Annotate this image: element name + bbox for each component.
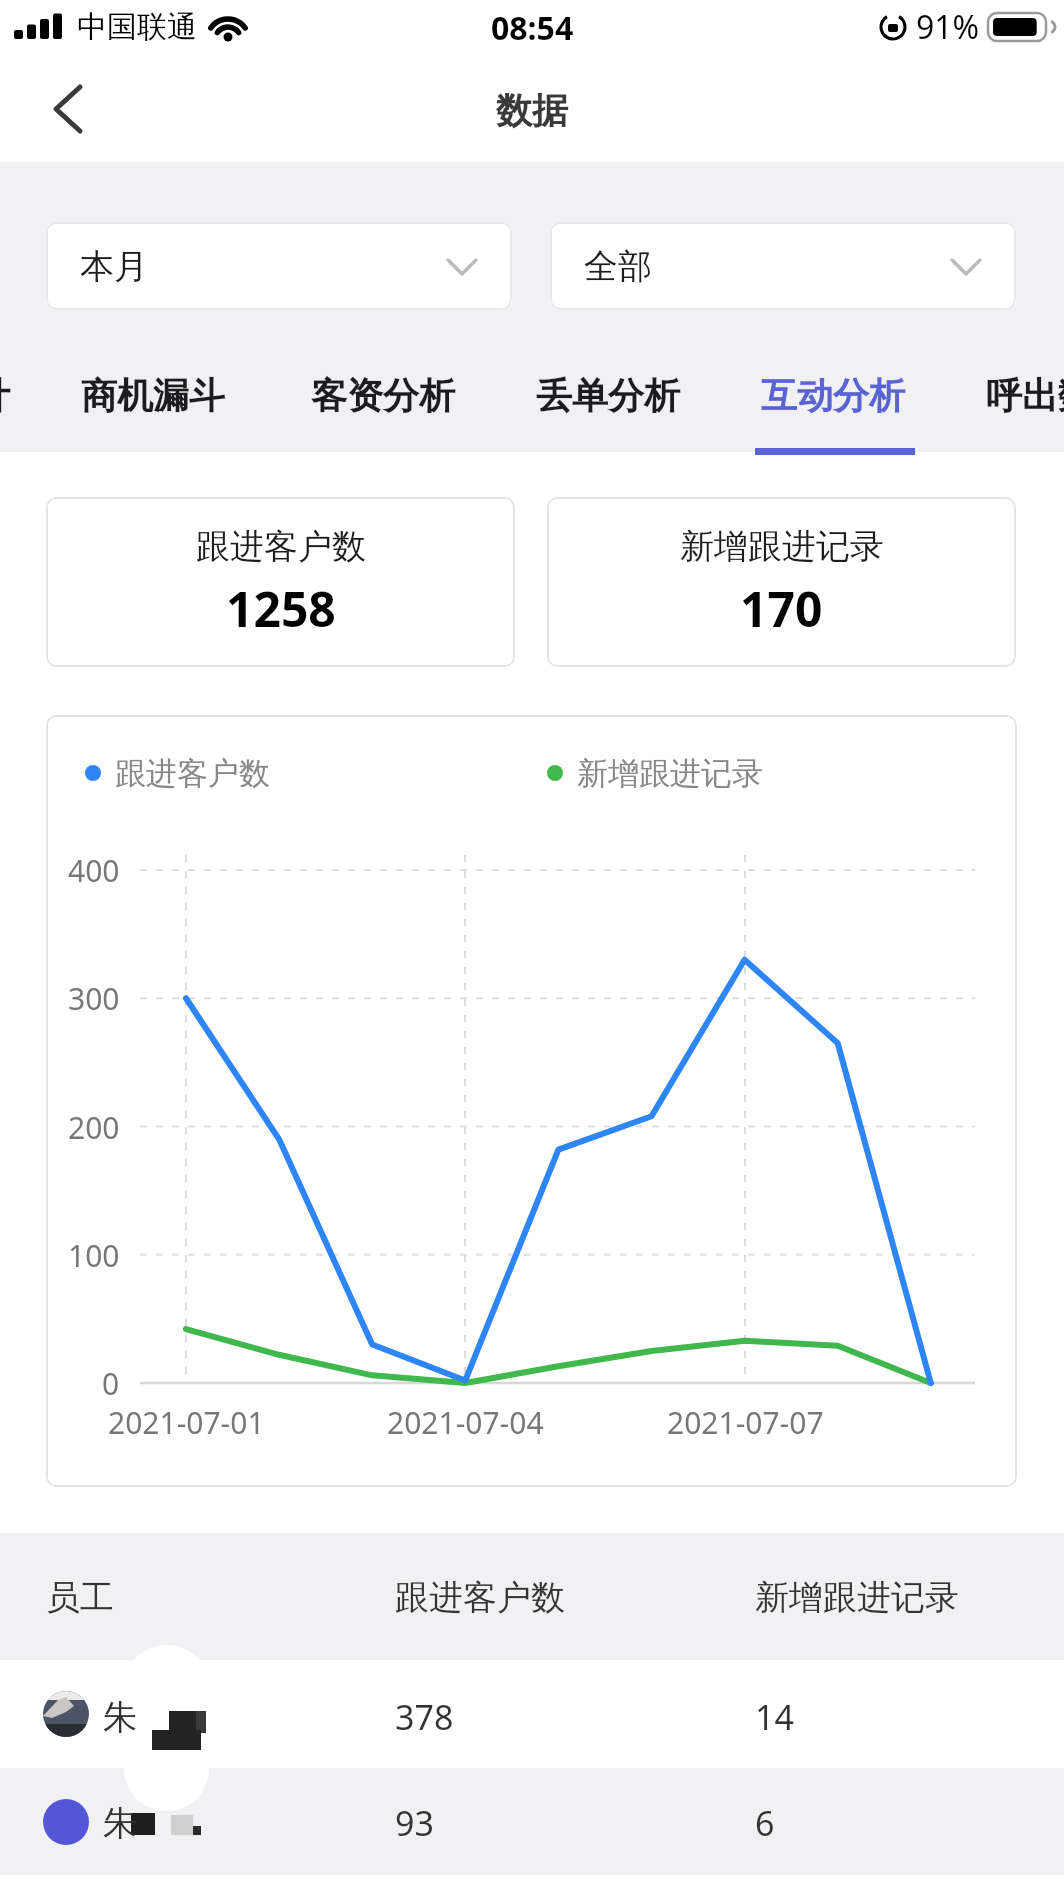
staticText: 14 <box>755 1694 794 1740</box>
button[interactable] <box>0 1660 1064 1768</box>
staticText: 跟进客户数 <box>115 754 270 793</box>
staticText: 本月 <box>80 245 148 288</box>
button[interactable]: 互动分析 <box>683 360 983 430</box>
staticText: 新增跟进记录 <box>755 1576 959 1619</box>
button[interactable]: 呼出数据 <box>933 360 1064 430</box>
staticText: 400 <box>68 850 120 891</box>
staticText: 93 <box>395 1800 434 1846</box>
staticText: 客资分析 <box>311 373 455 418</box>
staticText: 08:54 <box>491 6 574 50</box>
button[interactable] <box>36 79 96 139</box>
staticText: 跟进客户数 <box>395 1576 565 1619</box>
staticText: 员工 <box>46 1576 114 1619</box>
staticText: 跟进客户数 <box>196 525 366 568</box>
button[interactable]: 本月 <box>46 222 512 310</box>
button[interactable]: 跟进客户数 <box>46 497 515 667</box>
staticText: 378 <box>395 1694 454 1740</box>
button[interactable]: 新增跟进记录 <box>547 497 1016 667</box>
staticText: 200 <box>68 1107 120 1148</box>
staticText: 全部 <box>584 245 652 288</box>
staticText: 丢单分析 <box>536 373 680 418</box>
staticText: 计 <box>0 373 10 418</box>
button[interactable]: 客资分析 <box>233 360 533 430</box>
staticText: 170 <box>740 576 823 641</box>
staticText: 商机漏斗 <box>81 373 225 418</box>
staticText: 91% <box>916 5 980 49</box>
button[interactable]: 丢单分析 <box>458 360 758 430</box>
staticText: 朱 <box>103 1802 137 1845</box>
staticText: 2021-07-04 <box>387 1402 544 1443</box>
staticText: 6 <box>755 1800 775 1846</box>
staticText: 100 <box>68 1235 120 1276</box>
staticText: 0 <box>102 1363 120 1404</box>
staticText: 300 <box>68 978 120 1019</box>
staticText: 2021-07-07 <box>667 1402 824 1443</box>
button[interactable]: 全部 <box>550 222 1016 310</box>
button[interactable] <box>0 1768 1064 1875</box>
staticText: 呼出数据 <box>986 373 1064 418</box>
staticText: 中国联通 <box>77 8 197 46</box>
staticText: 新增跟进记录 <box>577 754 763 793</box>
staticText: 数据 <box>496 88 568 133</box>
staticText: 1258 <box>226 576 336 641</box>
staticText: 2021-07-01 <box>108 1402 265 1443</box>
staticText: 朱 <box>103 1696 137 1739</box>
staticText: 互动分析 <box>761 373 905 418</box>
staticText: 新增跟进记录 <box>680 525 884 568</box>
button[interactable]: 商机漏斗 <box>3 360 303 430</box>
